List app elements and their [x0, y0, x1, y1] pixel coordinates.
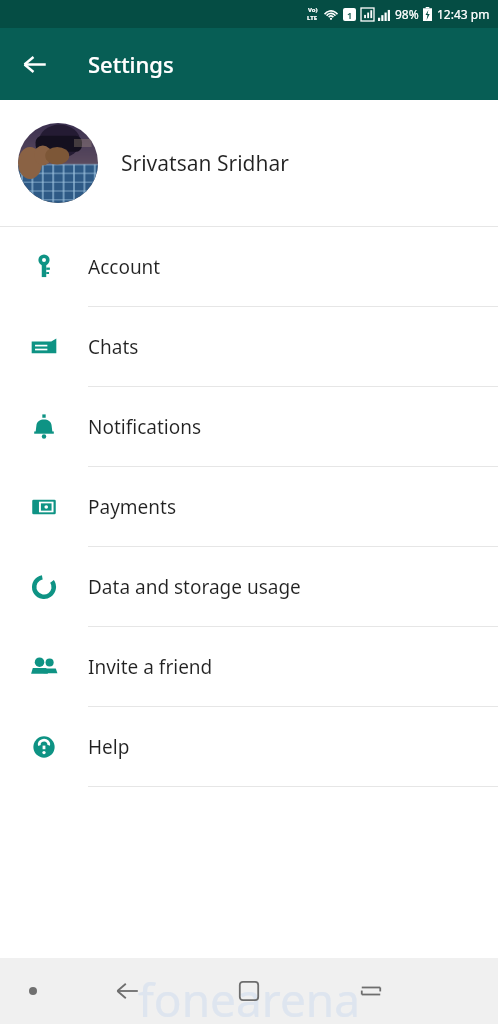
button[interactable]: Srivatsan Sridhar — [0, 100, 498, 226]
staticText: Chats — [88, 334, 139, 360]
button[interactable]: Back — [66, 958, 188, 1024]
button[interactable]: Payments — [0, 467, 498, 546]
button[interactable]: Notifications — [0, 387, 498, 466]
staticText: Payments — [88, 494, 177, 520]
button[interactable]: Chats — [0, 307, 498, 386]
button[interactable]: Home — [188, 958, 310, 1024]
button[interactable]: Back — [10, 40, 58, 88]
staticText: Help — [88, 734, 130, 760]
staticText: Settings — [88, 49, 174, 79]
staticText: Invite a friend — [88, 654, 213, 680]
staticText: Data and storage usage — [88, 574, 301, 600]
staticText: Notifications — [88, 414, 202, 440]
button[interactable]: Help — [0, 707, 498, 786]
staticText: LTE — [307, 14, 318, 22]
button[interactable]: Account — [0, 227, 498, 306]
staticText: Srivatsan Sridhar — [121, 149, 289, 178]
staticText: Vo) — [308, 6, 318, 14]
staticText: 1 — [347, 9, 353, 21]
staticText: 98% — [395, 6, 419, 22]
button[interactable]: Data and storage usage — [0, 547, 498, 626]
staticText: Account — [88, 254, 161, 280]
button[interactable]: Recents — [310, 958, 432, 1024]
staticText: fonearena — [138, 968, 361, 1024]
staticText: 12:43 pm — [437, 6, 490, 22]
button[interactable]: Invite a friend — [0, 627, 498, 706]
